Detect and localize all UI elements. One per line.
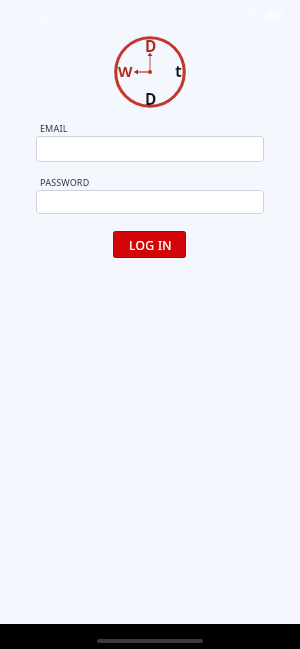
button[interactable]: LOG IN — [113, 231, 186, 258]
staticText: t — [175, 60, 182, 81]
staticText: PASSWORD — [40, 176, 90, 188]
other: WDDt app logo — [107, 29, 193, 115]
button[interactable]: Email input field — [36, 136, 264, 162]
staticText: EMAIL — [40, 122, 68, 134]
staticText: D — [145, 35, 157, 56]
staticText: LOG IN — [129, 237, 172, 253]
staticText: D — [145, 88, 157, 109]
staticText: W — [118, 61, 133, 81]
button[interactable]: Password input field — [36, 190, 264, 214]
